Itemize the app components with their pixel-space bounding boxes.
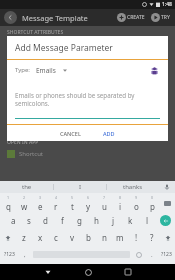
staticText: z <box>22 232 26 243</box>
staticText: l <box>146 215 149 226</box>
staticText: u <box>102 201 107 212</box>
staticText: 1:48 <box>162 1 172 8</box>
button[interactable]: ! <box>128 229 144 246</box>
button[interactable]: Enter <box>156 212 175 229</box>
button[interactable]: j <box>105 212 122 229</box>
button[interactable]: Emoji <box>132 246 146 263</box>
button[interactable]: . <box>146 246 157 263</box>
staticText: x <box>38 232 43 243</box>
staticText: y <box>86 201 91 212</box>
staticText: 3 <box>39 195 42 200</box>
button[interactable]: 0 <box>144 195 160 212</box>
staticText: SHORTCUT ATTRIBUTES <box>7 29 64 36</box>
button[interactable]: 1 <box>0 195 16 212</box>
staticText: m <box>116 232 124 243</box>
staticText: k <box>128 215 133 226</box>
staticText: I <box>79 183 82 191</box>
button[interactable]: Backspace <box>160 195 175 212</box>
staticText: f <box>61 215 64 226</box>
staticText: Emails <box>36 66 56 75</box>
button[interactable]: CANCEL <box>56 128 85 139</box>
staticText: thanks <box>123 183 143 191</box>
staticText: t <box>71 201 74 212</box>
staticText: s <box>27 215 31 226</box>
button[interactable]: I <box>54 181 106 193</box>
staticText: the <box>22 183 32 191</box>
button[interactable]: 2 <box>16 195 32 212</box>
staticText: Emails or phones should be separated by … <box>15 91 160 107</box>
button[interactable]: ? <box>144 229 160 246</box>
staticText: 8 <box>119 195 122 200</box>
button[interactable]: ?123 <box>0 246 18 263</box>
staticText: a <box>11 215 16 226</box>
staticText: ?123 <box>161 251 172 258</box>
button[interactable]: x <box>32 229 48 246</box>
staticText: 5 <box>71 195 74 200</box>
staticText: i <box>119 201 122 212</box>
staticText: p <box>150 201 155 212</box>
button[interactable]: m <box>112 229 128 246</box>
button[interactable]: Emails <box>36 66 67 75</box>
button[interactable]: ?123 <box>157 246 175 263</box>
staticText: CANCEL <box>60 130 81 137</box>
button[interactable]: 8 <box>112 195 128 212</box>
staticText: v <box>70 232 75 243</box>
staticText: c <box>54 232 58 243</box>
staticText: 4 <box>55 195 58 200</box>
button[interactable]: l <box>139 212 156 229</box>
staticText: 2 <box>23 195 26 200</box>
button[interactable]: 6 <box>80 195 96 212</box>
button[interactable]: ADD <box>99 128 119 139</box>
staticText: Add Message Parameter <box>15 42 113 54</box>
button[interactable]: Back <box>4 11 17 24</box>
staticText: e <box>38 201 43 212</box>
button[interactable]: thanks <box>107 181 159 193</box>
staticText: , <box>24 251 26 259</box>
staticText: . <box>151 251 153 259</box>
staticText: n <box>102 232 107 243</box>
button[interactable]: Voice input <box>159 181 175 193</box>
staticText: j <box>112 215 115 226</box>
button[interactable]: f <box>54 212 71 229</box>
button[interactable]: h <box>88 212 105 229</box>
button[interactable]: 5 <box>64 195 80 212</box>
staticText: ?123 <box>4 251 15 258</box>
button[interactable]: 9 <box>128 195 144 212</box>
button[interactable]: c <box>48 229 64 246</box>
button[interactable]: d <box>37 212 54 229</box>
staticText: Shortcut <box>19 150 44 158</box>
staticText: g <box>77 215 82 226</box>
button[interactable]: v <box>64 229 80 246</box>
button[interactable]: Recents <box>108 264 148 280</box>
button[interactable]: a <box>5 212 21 229</box>
button[interactable]: 3 <box>32 195 48 212</box>
button[interactable]: z <box>15 229 32 246</box>
staticText: 0 <box>151 195 154 200</box>
button[interactable]: Back <box>28 264 68 280</box>
button[interactable]: , <box>18 246 31 263</box>
staticText: OPEN IN APP <box>7 139 39 146</box>
button[interactable]: TRY <box>150 12 171 23</box>
staticText: o <box>134 201 139 212</box>
button[interactable]: 7 <box>96 195 112 212</box>
button[interactable]: b <box>80 229 96 246</box>
button[interactable]: 4 <box>48 195 64 212</box>
staticText: 9 <box>135 195 138 200</box>
staticText: Message Template <box>22 13 88 23</box>
staticText: ? <box>150 232 154 243</box>
button[interactable]: the <box>0 181 53 193</box>
button[interactable]: Home <box>68 264 108 280</box>
button[interactable]: CREATE <box>116 12 146 23</box>
button[interactable]: n <box>96 229 112 246</box>
staticText: TRY <box>161 14 170 21</box>
button[interactable]: g <box>71 212 88 229</box>
staticText: Type: <box>15 66 30 74</box>
button[interactable]: Shift <box>0 229 15 246</box>
staticText: d <box>43 215 48 226</box>
button[interactable]: s <box>21 212 37 229</box>
button[interactable]: Shift <box>160 229 175 246</box>
staticText: r <box>54 201 58 212</box>
button[interactable]: Pick contact <box>149 65 160 76</box>
button[interactable]: k <box>122 212 139 229</box>
